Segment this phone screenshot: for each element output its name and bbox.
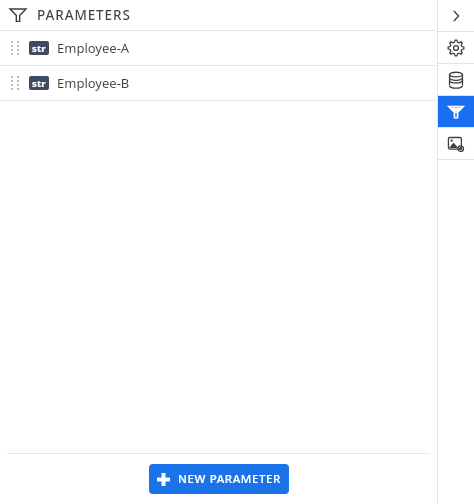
button[interactable]: Expand panel [438,0,474,31]
staticText: PARAMETERS [37,6,131,24]
button[interactable]: Settings [438,32,474,63]
button[interactable]: str [0,66,437,100]
button[interactable]: Data sources [438,64,474,95]
button[interactable]: Image settings [438,128,474,159]
staticText: Employee-B [57,74,130,92]
staticText: NEW PARAMETER [178,471,281,487]
staticText: Employee-A [57,39,130,57]
button[interactable]: PARAMETERS [0,0,437,30]
staticText: str [32,42,46,55]
button[interactable]: NEW PARAMETER [149,464,289,494]
button[interactable]: Parameters [438,96,474,127]
button[interactable]: str [0,31,437,65]
staticText: str [32,77,46,90]
